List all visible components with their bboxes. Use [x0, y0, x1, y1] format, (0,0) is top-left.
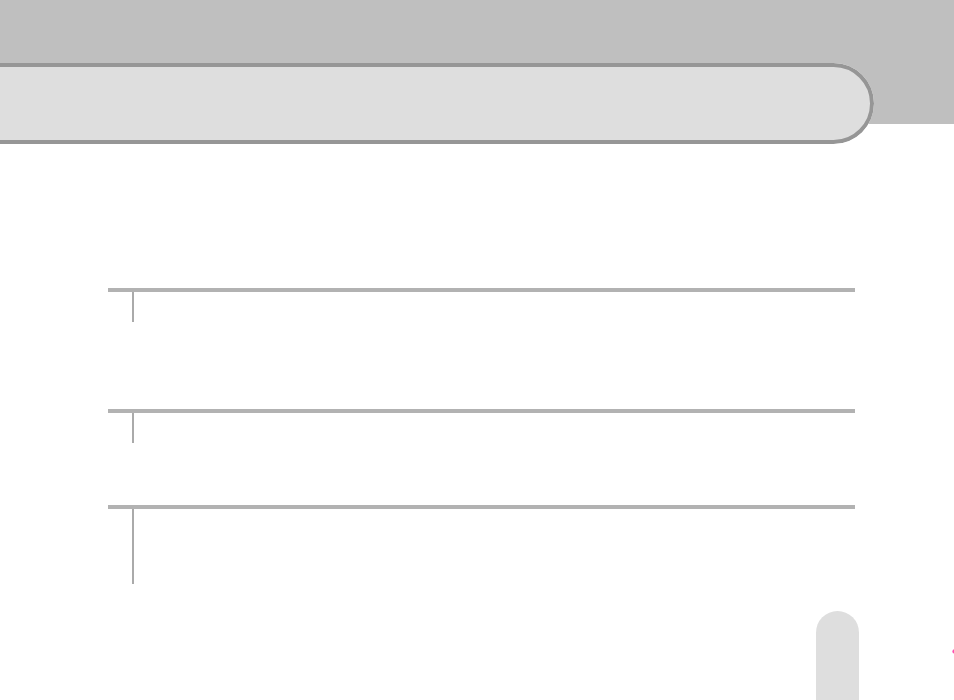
button[interactable]: List item 2: [108, 409, 855, 505]
button[interactable]: Add: [816, 611, 859, 700]
button[interactable]: Search: [0, 63, 874, 144]
button[interactable]: List item 3: [108, 505, 855, 611]
button[interactable]: List item 1: [108, 288, 855, 409]
